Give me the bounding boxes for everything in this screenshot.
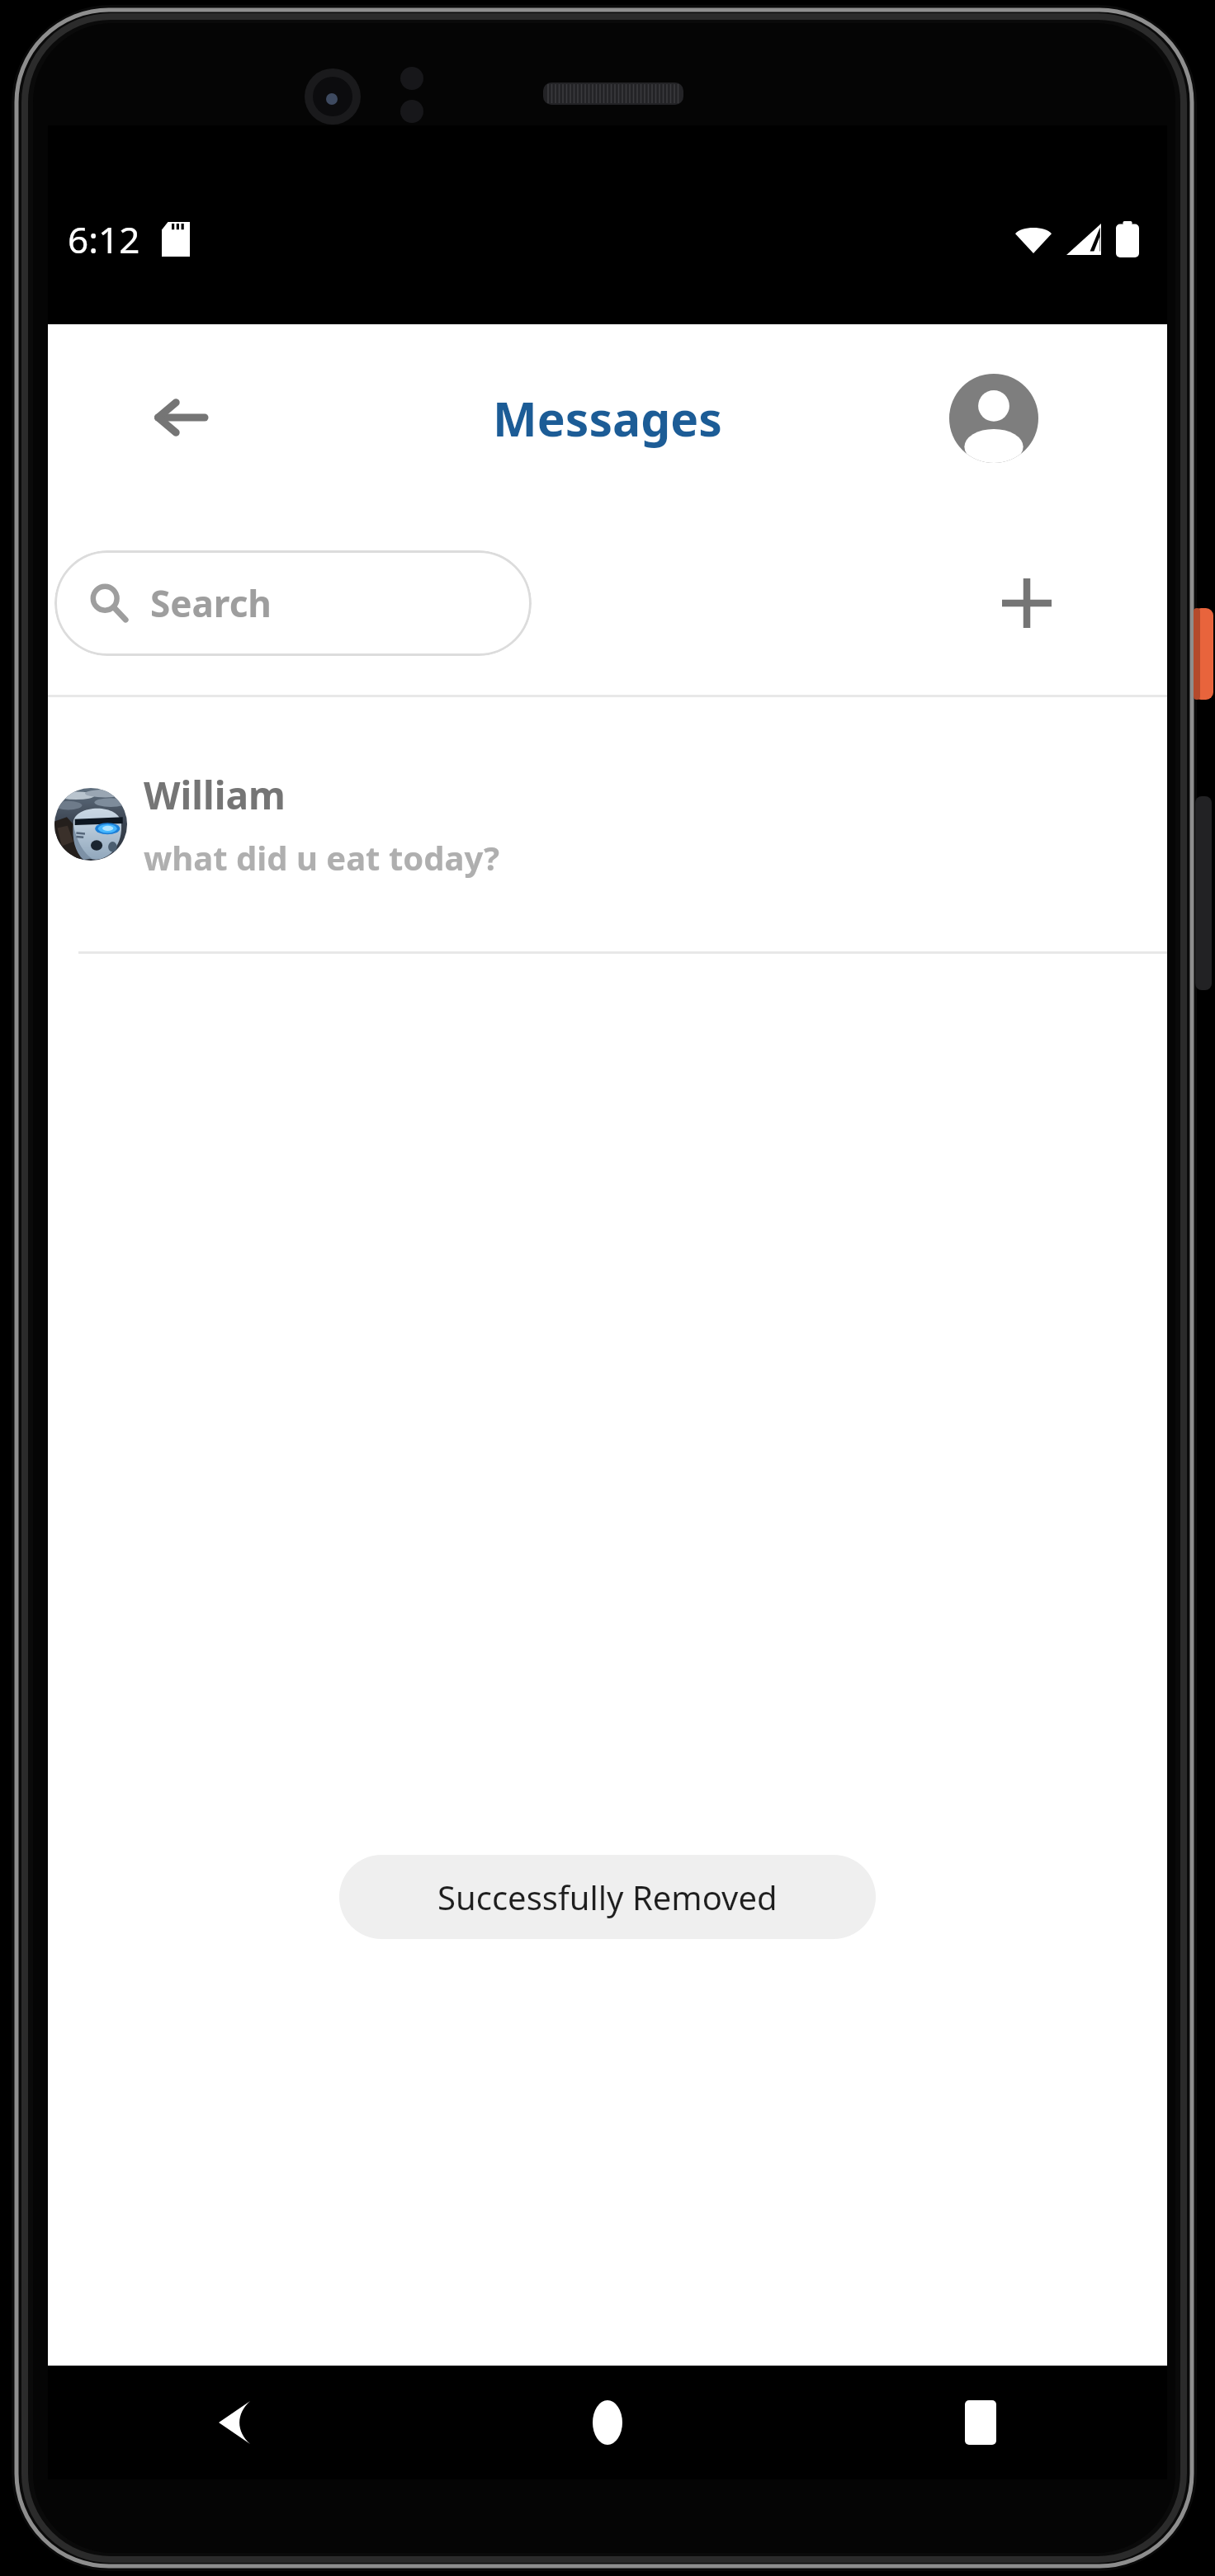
staticText: William — [144, 769, 286, 821]
button[interactable]: Back — [185, 2373, 284, 2472]
button[interactable]: Search — [54, 550, 532, 656]
staticText: Search — [150, 578, 272, 628]
staticText: what did u eat today? — [144, 835, 500, 880]
staticText: Successfully Removed — [437, 1875, 778, 1919]
button[interactable]: Successfully Removed — [339, 1855, 876, 1939]
button[interactable]: William — [48, 697, 1167, 951]
button[interactable]: Home — [558, 2373, 657, 2472]
button[interactable]: Recents — [931, 2373, 1030, 2472]
button[interactable]: Back — [144, 381, 216, 454]
staticText: 6:12 — [68, 215, 140, 264]
staticText: Messages — [493, 386, 722, 451]
button[interactable]: New message — [987, 564, 1066, 643]
button[interactable]: Profile — [949, 374, 1038, 463]
